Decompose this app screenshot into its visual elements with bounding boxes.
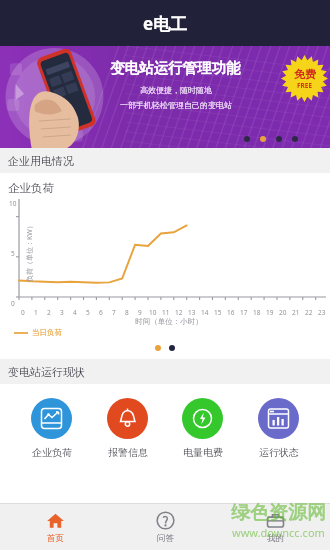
staticText: 9 [138, 308, 142, 317]
staticText: 17 [240, 308, 248, 317]
staticText: 11 [162, 308, 170, 317]
button[interactable]: 企业负荷 [27, 396, 76, 461]
staticText: 企业用电情况 [8, 154, 74, 168]
staticText: 13 [188, 308, 196, 317]
staticText: FREE [297, 81, 313, 90]
staticText: 我的 [267, 533, 284, 544]
button[interactable]: 电量电费 [178, 396, 227, 461]
staticText: 当日负荷 [32, 328, 62, 337]
staticText: 5 [86, 308, 90, 317]
button[interactable]: 报警信息 [103, 396, 152, 461]
button[interactable]: 首页 [0, 504, 110, 550]
staticText: 7 [112, 308, 116, 317]
staticText: 变电站运行管理功能 [110, 59, 241, 77]
staticText: 21 [292, 308, 300, 317]
staticText: 19 [266, 308, 274, 317]
staticText: 一部手机轻松管理自己的变电站 [120, 100, 232, 110]
staticText: 14 [201, 308, 209, 317]
staticText: 免费 [294, 67, 316, 81]
staticText: 10 [149, 308, 157, 317]
staticText: 企业负荷 [8, 181, 54, 195]
staticText: 高效便捷，随时随地 [140, 85, 212, 95]
staticText: 18 [253, 308, 261, 317]
staticText: 10 [9, 199, 17, 208]
staticText: 15 [214, 308, 222, 317]
staticText: 首页 [47, 533, 64, 544]
button[interactable]: 运行状态 [254, 396, 303, 461]
button[interactable]: 我的 [220, 504, 330, 550]
staticText: 3 [60, 308, 64, 317]
staticText: 12 [175, 308, 183, 317]
staticText: 20 [279, 308, 287, 317]
button[interactable]: 变电站运行管理功能 [0, 46, 330, 148]
staticText: 绿色资源网 [231, 501, 326, 525]
staticText: 电量电费 [183, 446, 223, 459]
button[interactable]: 问答 [110, 504, 220, 550]
staticText: 时间（单位：小时） [8, 317, 330, 326]
staticText: 2 [47, 308, 51, 317]
staticText: 22 [305, 308, 313, 317]
staticText: 运行状态 [259, 446, 299, 459]
staticText: 8 [125, 308, 129, 317]
staticText: www.downcc.com [232, 525, 325, 540]
staticText: 5 [11, 249, 15, 258]
staticText: 问答 [157, 533, 174, 544]
staticText: 16 [227, 308, 235, 317]
staticText: 负荷（单位：KW） [25, 222, 35, 282]
staticText: 企业负荷 [32, 446, 72, 459]
staticText: 4 [73, 308, 77, 317]
staticText: 0 [11, 299, 15, 308]
staticText: 变电站运行现状 [8, 365, 85, 379]
staticText: 0 [21, 308, 25, 317]
staticText: 23 [318, 308, 326, 317]
staticText: e电工 [143, 12, 188, 35]
staticText: 6 [99, 308, 103, 317]
staticText: 1 [34, 308, 38, 317]
staticText: 报警信息 [108, 446, 148, 459]
